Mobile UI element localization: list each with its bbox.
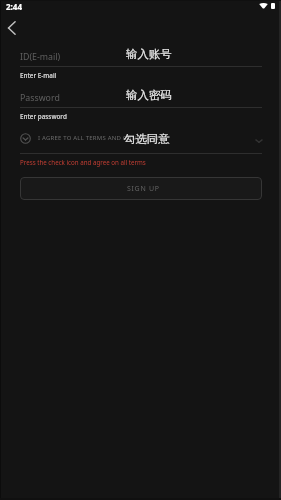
button[interactable]: SIGN UP [20,177,262,200]
staticText: Enter password [20,112,67,121]
staticText: 勾选同意 [124,132,170,146]
staticText: Enter E-mail [20,71,57,80]
staticText: I AGREE TO ALL TERMS AND CONDITIONS [38,134,163,142]
button[interactable]: Agree to all terms [20,128,262,148]
button[interactable]: Back [0,15,24,39]
other: Agree to all terms [20,133,31,144]
staticText: ID(E-mail) [20,51,61,63]
staticText: 输入密码 [126,88,172,102]
staticText: 2:44 [6,1,22,12]
staticText: Password [20,92,60,104]
staticText: Press the check icon and agree on all te… [20,158,146,166]
button[interactable]: Expand terms [248,131,262,145]
staticText: 输入账号 [126,47,172,61]
staticText: SIGN UP [127,184,160,194]
